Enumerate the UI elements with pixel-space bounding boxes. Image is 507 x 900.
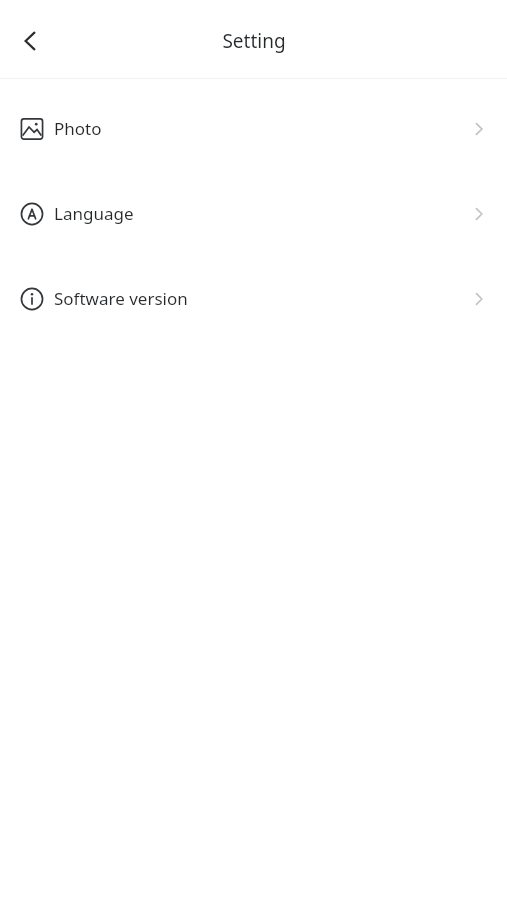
button[interactable]: Back <box>2 13 58 69</box>
button[interactable]: Photo <box>0 86 507 171</box>
button[interactable]: Software version <box>0 256 507 341</box>
staticText: Language <box>54 202 134 225</box>
staticText: Setting <box>222 28 286 54</box>
staticText: Software version <box>54 287 188 310</box>
staticText: Photo <box>54 117 102 140</box>
button[interactable]: Language <box>0 171 507 256</box>
